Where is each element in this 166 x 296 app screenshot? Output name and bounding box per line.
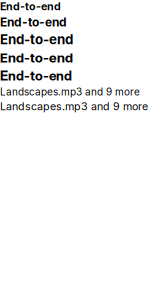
- staticText: Landscapes.mp3 and 9 more: [0, 86, 140, 98]
- staticText: End-to-end: [0, 0, 61, 13]
- staticText: End-to-end: [0, 31, 73, 47]
- staticText: End-to-end: [0, 15, 67, 29]
- staticText: End-to-end: [0, 50, 73, 66]
- staticText: Landscapes.mp3 and 9 more: [0, 100, 148, 113]
- staticText: End-to-end: [0, 68, 72, 84]
